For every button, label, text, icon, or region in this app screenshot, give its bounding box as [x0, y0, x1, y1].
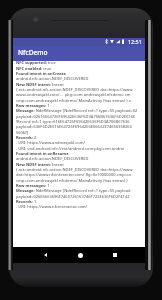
staticText: 5606f]	[16, 130, 29, 135]
staticText: Records: 2	[16, 135, 37, 140]
staticText: NFC supported: true	[16, 60, 56, 65]
staticText: payload=02616E64726F69642E636F6D3A706B67…	[16, 114, 136, 119]
staticText: cmp=com.andreasjakl.nfcdemo/.MainActivit…	[16, 178, 128, 183]
staticText: cmp=com.andreasjakl.nfcdemo/.MainActivit…	[16, 98, 131, 103]
staticText: Found intent in onCreate	[16, 71, 66, 76]
staticText: NfcDemo	[18, 48, 48, 57]
staticText: - URI: https://www.nfcinteractor.com/	[16, 204, 88, 209]
staticText: payload=636F6D2E616E64726F69642E6E66632E…	[16, 124, 132, 129]
button[interactable]: Back	[37, 247, 53, 263]
staticText: New NDEF intent: Intent	[16, 82, 64, 87]
staticText: Raw messages: 1	[16, 103, 50, 108]
staticText: NFC enabled: true	[16, 66, 52, 71]
button[interactable]: NfcDemo	[13, 46, 145, 61]
staticText: Message: NdefMessage [NdefRecord tnf=1 t…	[16, 188, 131, 193]
staticText: android.nfc.action.NDEF_DISCOVERED	[16, 156, 89, 161]
staticText: android.nfc.action.NDEF_DISCOVERED	[16, 76, 89, 81]
button[interactable]: Home	[72, 247, 88, 263]
staticText: 12:51	[128, 38, 142, 45]
staticText: www.andreasjakl.com/... pkg=com.andreasj…	[16, 92, 131, 97]
staticText: New NDEF intent: Intent	[16, 162, 64, 167]
staticText: Message: NdefMessage [NdefRecord tnf=1 t…	[16, 108, 138, 113]
staticText: Records: 1	[16, 199, 37, 204]
staticText: dat=https://www.nfcinteractor.com/ flg=0…	[16, 172, 132, 177]
staticText: Raw messages: 1	[16, 183, 50, 188]
staticText: { act=android.nfc.action.NDEF_DISCOVERED…	[16, 87, 134, 92]
staticText: - URI: vnd.android.nfc://ext/android.com…	[16, 146, 125, 151]
staticText: payload=026E6663696E7465726163746F722E63…	[16, 194, 130, 199]
staticText: !Record tnf=1 type=616E64726F69642E636F6…	[16, 119, 130, 124]
staticText: { act=android.nfc.action.NDEF_DISCOVERED…	[16, 167, 133, 172]
button[interactable]: Recents	[107, 247, 123, 263]
staticText: - URI: https://www.andreasjakl.com/	[16, 140, 86, 145]
staticText: Found intent in onResume	[16, 151, 69, 156]
